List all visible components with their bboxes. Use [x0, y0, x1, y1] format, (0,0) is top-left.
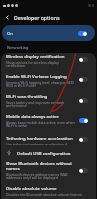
button[interactable]: Show Bluetooth devices without names — [1, 160, 96, 185]
button[interactable]: Wireless display certification — [79, 57, 88, 62]
button[interactable]: Mobile data always active — [79, 118, 88, 123]
staticText: Show options for wireless display certif… — [6, 60, 76, 68]
staticText: Disable absolute volume — [6, 185, 57, 191]
staticText: Networking — [7, 45, 29, 50]
staticText: Show Bluetooth devices without names — [6, 160, 76, 171]
button[interactable]: Default USB configuration — [1, 145, 96, 160]
button[interactable]: Disable absolute volume — [1, 185, 96, 199]
staticText: Bluetooth devices without names (MAC add… — [6, 172, 76, 180]
staticText: Tethering hardware acceleration — [6, 135, 73, 141]
button[interactable]: Enable Wi-Fi Verbose Logging — [1, 73, 96, 93]
staticText: Disables the Bluetooth absolute volume f… — [6, 192, 82, 197]
staticText: Default USB configuration — [17, 150, 71, 156]
staticText: On — [7, 30, 14, 36]
button[interactable]: Developer options on — [78, 31, 87, 36]
staticText: Always keep mobile data active, even whe… — [6, 120, 76, 128]
button[interactable]: Wireless display certification — [1, 53, 96, 73]
staticText: Wireless display certification — [6, 53, 65, 59]
staticText: Enable Wi-Fi Verbose Logging — [6, 73, 67, 79]
button[interactable]: Back — [0, 10, 14, 24]
staticText: Mobile data always active — [6, 113, 59, 119]
staticText: Use tethering hardware acceleration if a… — [6, 142, 76, 145]
staticText: Developer options — [14, 14, 60, 21]
button[interactable]: Show Bluetooth devices without names — [79, 168, 88, 173]
staticText: Saves battery and improves network perfo… — [6, 100, 76, 108]
staticText: Wi-Fi scan throttling — [6, 93, 48, 99]
button[interactable]: Tethering hardware acceleration — [1, 135, 96, 145]
button[interactable]: Wi-Fi scan throttling — [79, 98, 88, 103]
button[interactable]: On — [2, 25, 95, 41]
button[interactable]: Wi-Fi scan throttling — [1, 93, 96, 113]
button[interactable]: Mobile data always active — [1, 113, 96, 135]
staticText: Increase Wi-Fi logging level, show per S… — [6, 80, 76, 88]
button[interactable]: Tethering hardware acceleration — [79, 137, 88, 142]
button[interactable]: Enable Wi-Fi Verbose Logging — [79, 77, 88, 82]
